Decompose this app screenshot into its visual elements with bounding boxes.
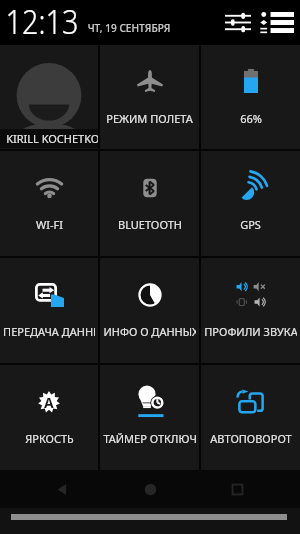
staticText: WI-FI [36,217,63,232]
button[interactable]: 66% [201,45,300,149]
staticText: 66% [240,111,262,126]
staticText: ТАЙМЕР ОТКЛЮЧЕНИЯ [103,431,196,446]
button[interactable]: BLUETOOTH [100,151,199,256]
staticText: ЯРКОСТЬ [25,431,74,446]
button[interactable]: KIRILL KOCHETKOV [0,45,98,149]
staticText: ЧТ, 19 СЕНТЯБРЯ [88,20,171,35]
button[interactable]: ПЕРЕДАЧА ДАННЫХ [0,258,98,363]
staticText: ИНФО О ДАННЫХ [103,324,196,339]
button[interactable]: Home [126,470,174,508]
button[interactable]: WI-FI [0,151,98,256]
staticText: АВТОПОВОРОТ [210,431,292,446]
button[interactable]: ПРОФИЛИ ЗВУКА [201,258,300,363]
staticText: BLUETOOTH [118,217,182,232]
staticText: РЕЖИМ ПОЛЕТА [106,111,193,126]
button[interactable]: Quick settings [218,0,258,45]
button[interactable]: Recents [213,470,261,508]
button[interactable]: РЕЖИМ ПОЛЕТА [100,45,199,149]
staticText: ПРОФИЛИ ЗВУКА [204,324,297,339]
button[interactable]: GPS [201,151,300,256]
button[interactable]: ИНФО О ДАННЫХ [100,258,199,363]
button[interactable]: АВТОПОВОРОТ [201,365,300,470]
staticText: KIRILL KOCHETKOV [6,131,98,146]
staticText: 12:13 [5,0,78,44]
staticText: GPS [240,217,261,232]
button[interactable]: A [0,365,98,470]
button[interactable]: ТАЙМЕР ОТКЛЮЧЕНИЯ [100,365,199,470]
button[interactable]: Notifications [258,0,296,45]
staticText: ПЕРЕДАЧА ДАННЫХ [3,324,95,339]
button[interactable]: Back [39,470,87,508]
staticText: A [44,393,54,412]
